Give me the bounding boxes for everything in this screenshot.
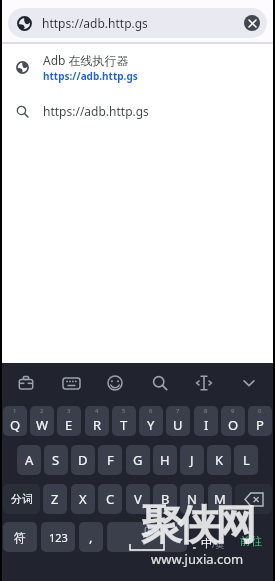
staticText: 分词: [11, 492, 33, 506]
button[interactable]: 3: [57, 406, 81, 436]
staticText: B: [161, 490, 170, 508]
button[interactable]: 2: [30, 406, 54, 436]
staticText: O: [228, 416, 239, 434]
staticText: https://adb.http.gs: [43, 69, 138, 83]
button[interactable]: 7: [166, 406, 190, 436]
staticText: N: [187, 490, 197, 508]
button[interactable]: 1: [3, 406, 27, 436]
button[interactable]: L: [234, 445, 258, 475]
button[interactable]: G: [126, 445, 150, 475]
staticText: A: [25, 451, 34, 469]
button[interactable]: https://adb.http.gs: [8, 8, 267, 38]
button[interactable]: A: [17, 445, 41, 475]
staticText: 1: [13, 407, 17, 415]
button[interactable]: D: [71, 445, 95, 475]
button[interactable]: B: [153, 484, 177, 514]
staticText: Adb 在线执行器: [43, 52, 129, 68]
staticText: Z: [51, 490, 59, 508]
button[interactable]: V: [126, 484, 150, 514]
staticText: T: [120, 416, 128, 434]
button[interactable]: https://adb.http.gs: [0, 90, 275, 132]
button[interactable]: [99, 367, 131, 399]
button[interactable]: [235, 484, 272, 514]
staticText: X: [79, 490, 87, 508]
staticText: 5: [122, 407, 126, 415]
staticText: H: [160, 451, 170, 469]
button[interactable]: X: [71, 484, 95, 514]
button[interactable]: 5: [112, 406, 136, 436]
button[interactable]: 。: [190, 537, 204, 551]
staticText: U: [173, 416, 183, 434]
staticText: https://adb.http.gs: [43, 103, 149, 119]
staticText: C: [106, 490, 115, 508]
staticText: J: [190, 451, 194, 469]
staticText: K: [215, 451, 224, 469]
button[interactable]: Adb 在线执行器: [0, 44, 275, 90]
button[interactable]: 0: [248, 406, 272, 436]
staticText: E: [65, 416, 73, 434]
staticText: 3: [67, 407, 71, 415]
staticText: P: [256, 416, 264, 434]
staticText: 2: [40, 407, 44, 415]
button[interactable]: 6: [139, 406, 163, 436]
button[interactable]: ,: [79, 522, 103, 552]
button[interactable]: 中: [201, 536, 225, 550]
button[interactable]: S: [44, 445, 68, 475]
button[interactable]: 9: [221, 406, 245, 436]
staticText: Y: [147, 416, 155, 434]
staticText: 9: [231, 407, 235, 415]
staticText: L: [243, 451, 250, 469]
staticText: 123: [49, 530, 68, 545]
staticText: ,: [89, 528, 93, 546]
button[interactable]: [188, 367, 220, 399]
button[interactable]: N: [180, 484, 204, 514]
staticText: 7: [176, 407, 180, 415]
staticText: S: [52, 451, 60, 469]
staticText: 6: [149, 407, 153, 415]
staticText: https://adb.http.gs: [42, 15, 148, 31]
button[interactable]: C: [98, 484, 122, 514]
staticText: Q: [10, 416, 21, 434]
staticText: 4: [95, 407, 99, 415]
button[interactable]: [10, 367, 42, 399]
button[interactable]: K: [207, 445, 231, 475]
staticText: 符: [14, 530, 26, 545]
staticText: /英: [212, 538, 225, 550]
staticText: www.juxia.com: [151, 550, 244, 568]
button[interactable]: 4: [85, 406, 109, 436]
staticText: 。: [192, 537, 203, 551]
button[interactable]: [107, 522, 187, 552]
staticText: 8: [204, 407, 208, 415]
button[interactable]: 分词: [3, 484, 40, 514]
button[interactable]: [55, 367, 87, 399]
staticText: 中: [201, 536, 212, 550]
button[interactable]: 123: [41, 522, 75, 552]
button[interactable]: 符: [3, 522, 37, 552]
staticText: 聚侠网: [143, 500, 254, 552]
button[interactable]: M: [208, 484, 232, 514]
staticText: V: [134, 490, 142, 508]
button[interactable]: [144, 367, 176, 399]
staticText: 前往: [240, 534, 262, 548]
button[interactable]: Z: [43, 484, 67, 514]
staticText: I: [204, 416, 209, 434]
staticText: M: [214, 490, 226, 508]
staticText: W: [36, 416, 49, 434]
staticText: D: [78, 451, 88, 469]
button[interactable]: F: [98, 445, 122, 475]
button[interactable]: 前往: [235, 530, 267, 552]
button[interactable]: H: [153, 445, 177, 475]
staticText: R: [93, 416, 102, 434]
button[interactable]: [233, 367, 265, 399]
button[interactable]: [244, 15, 260, 31]
staticText: F: [107, 451, 114, 469]
button[interactable]: J: [180, 445, 204, 475]
button[interactable]: 8: [194, 406, 218, 436]
staticText: 0: [258, 407, 262, 415]
staticText: G: [133, 451, 143, 469]
